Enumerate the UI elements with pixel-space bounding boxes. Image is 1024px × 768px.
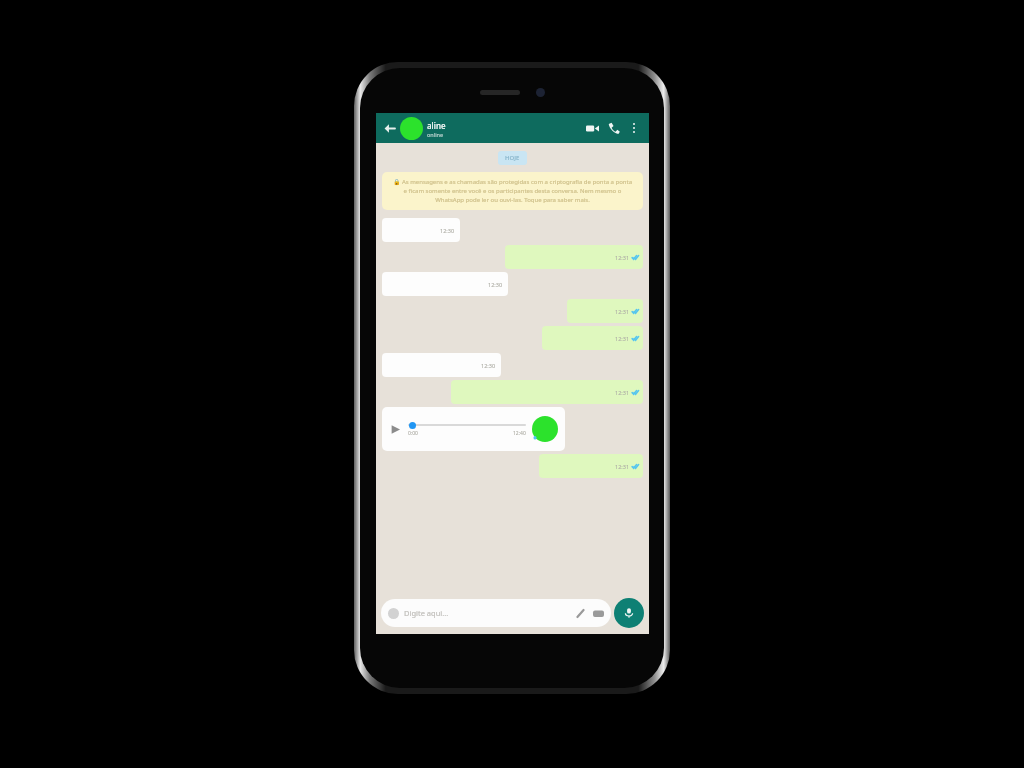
- button[interactable]: Record voice message: [614, 598, 644, 628]
- staticText: 12:31: [615, 335, 630, 342]
- button[interactable]: 12:30: [382, 218, 460, 242]
- staticText: 12:31: [615, 463, 630, 470]
- button[interactable]: Play: [382, 407, 565, 451]
- staticText: 12:30: [440, 227, 455, 234]
- button[interactable]: 12:31: [539, 454, 643, 478]
- button[interactable]: 12:31: [542, 326, 643, 350]
- button[interactable]: 12:30: [382, 353, 501, 377]
- staticText: 12:31: [615, 254, 630, 261]
- button[interactable]: More options: [625, 119, 643, 137]
- staticText: HOJE: [505, 154, 520, 162]
- button[interactable]: 12:31: [505, 245, 643, 269]
- button[interactable]: 12:31: [567, 299, 643, 323]
- staticText: 12:30: [481, 362, 496, 369]
- other: Play: [389, 423, 402, 436]
- staticText: 0:00: [408, 430, 418, 437]
- other: Camera: [593, 608, 604, 619]
- staticText: 12:31: [615, 389, 630, 396]
- button[interactable]: aline: [400, 117, 581, 140]
- staticText: 12:31: [615, 308, 630, 315]
- staticText: aline: [427, 120, 446, 131]
- button[interactable]: 12:30: [382, 272, 508, 296]
- other: Attach: [575, 608, 586, 619]
- button[interactable]: Digite aqui...: [381, 599, 611, 627]
- staticText: 12:30: [488, 281, 503, 288]
- staticText: 12:40: [513, 430, 526, 437]
- button[interactable]: 12:31: [451, 380, 643, 404]
- button[interactable]: Video call: [581, 117, 603, 139]
- staticText: 🔒 As mensagens e as chamadas são protegi…: [392, 178, 633, 204]
- staticText: Digite aqui...: [404, 608, 575, 618]
- button[interactable]: Back: [380, 119, 398, 137]
- button[interactable]: Voice call: [603, 117, 625, 139]
- staticText: online: [427, 131, 444, 138]
